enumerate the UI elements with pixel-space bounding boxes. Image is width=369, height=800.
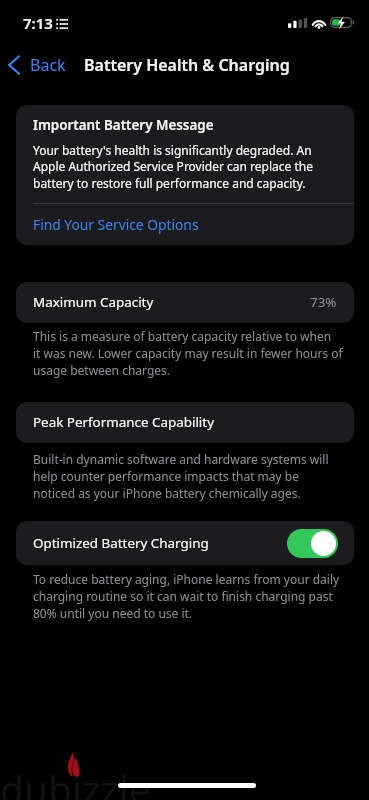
staticText: Built-in dynamic software and hardware s… — [33, 451, 329, 502]
staticText: Peak Performance Capability — [33, 413, 214, 431]
staticText: Important Battery Message — [33, 116, 214, 134]
button[interactable]: Peak Performance Capability — [16, 402, 354, 443]
staticText: Back — [30, 54, 66, 76]
staticText: To reduce battery aging, iPhone learns f… — [33, 571, 340, 622]
staticText: Find Your Service Options — [33, 215, 199, 234]
staticText: Your battery's health is significantly d… — [33, 142, 313, 191]
staticText: This is a measure of battery capacity re… — [33, 328, 343, 379]
button[interactable]: Find Your Service Options — [16, 208, 354, 242]
staticText: Optimized Battery Charging — [33, 534, 209, 552]
staticText: Maximum Capacity — [33, 293, 154, 311]
staticText: dubizzle — [0, 762, 151, 800]
staticText: Battery Health & Charging — [84, 54, 290, 76]
button[interactable]: Maximum Capacity — [16, 282, 354, 323]
staticText: 7:13 — [23, 13, 53, 33]
button[interactable]: Optimized Battery Charging, on — [287, 529, 338, 558]
button[interactable]: Back — [4, 51, 72, 79]
staticText: 73% — [310, 293, 337, 311]
